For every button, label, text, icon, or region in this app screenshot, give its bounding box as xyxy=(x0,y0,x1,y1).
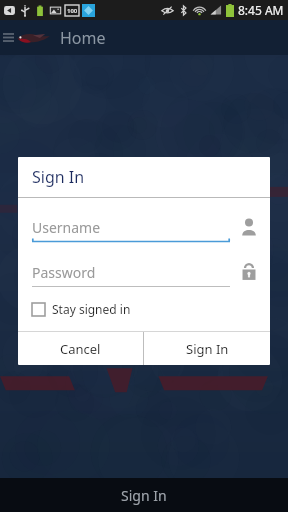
staticText: Username xyxy=(32,218,101,237)
staticText: 8:45 AM xyxy=(238,2,284,18)
button[interactable]: Sign In xyxy=(0,478,288,512)
staticText: Cancel xyxy=(60,340,101,358)
staticText: Sign In xyxy=(186,340,229,358)
staticText: Sign In xyxy=(32,166,85,188)
other: Username xyxy=(239,217,259,237)
button[interactable]: Stay signed in xyxy=(18,296,270,322)
staticText: Password xyxy=(32,263,96,282)
button[interactable]: Open navigation drawer xyxy=(0,20,16,55)
button[interactable]: Sign In xyxy=(144,332,270,365)
staticText: 100 xyxy=(67,7,78,15)
other: Password xyxy=(240,263,258,281)
button[interactable]: Username xyxy=(18,211,270,243)
button[interactable]: Cancel xyxy=(18,332,143,365)
staticText: Stay signed in xyxy=(52,301,131,317)
staticText: Sign In xyxy=(121,486,167,505)
button[interactable]: Password xyxy=(18,256,270,288)
staticText: Home xyxy=(60,27,106,49)
